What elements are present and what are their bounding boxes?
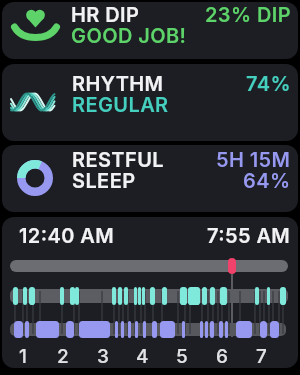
staticText: 6 — [216, 345, 229, 368]
staticText: 23% DIP — [205, 3, 291, 27]
staticText: 74% — [246, 72, 291, 96]
staticText: 7 — [256, 345, 268, 368]
staticText: SLEEP — [72, 169, 136, 193]
staticText: 1 — [19, 345, 28, 368]
staticText: 2 — [57, 345, 70, 368]
staticText: 3 — [97, 345, 110, 368]
button[interactable]: 12:40 AM — [2, 217, 298, 368]
staticText: 5 — [176, 345, 189, 368]
staticText: RESTFUL — [72, 148, 164, 172]
staticText: 5H 15M — [216, 148, 291, 172]
staticText: GOOD JOB! — [71, 24, 187, 48]
staticText: REGULAR — [72, 93, 169, 117]
staticText: HR DIP — [71, 3, 140, 27]
staticText: 4 — [136, 345, 149, 368]
button[interactable]: RESTFUL — [2, 145, 298, 212]
button[interactable]: HR DIP — [2, 2, 298, 59]
staticText: 64% — [243, 169, 291, 193]
button[interactable]: RHYTHM — [2, 64, 298, 141]
staticText: 12:40 AM — [19, 224, 115, 248]
staticText: 7:55 AM — [207, 224, 291, 248]
staticText: RHYTHM — [72, 72, 164, 96]
